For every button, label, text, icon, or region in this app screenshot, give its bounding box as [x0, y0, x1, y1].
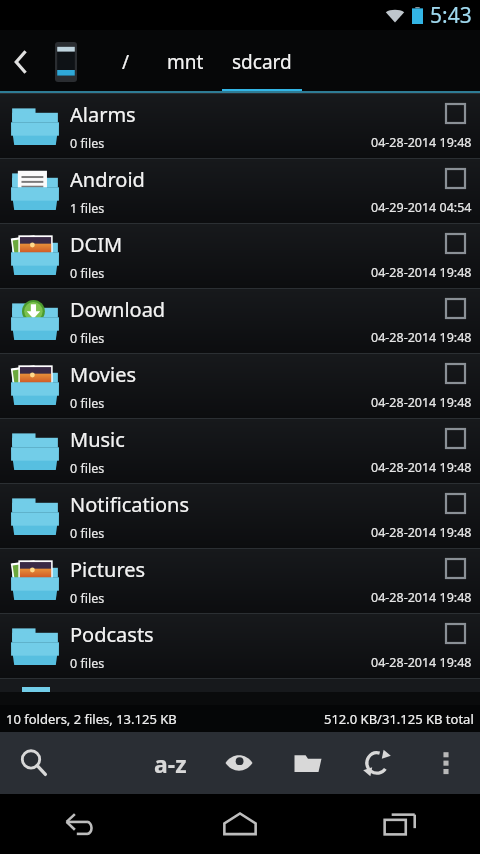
- button[interactable]: Select Download: [446, 299, 465, 318]
- staticText: 04-28-2014 19:48: [371, 394, 472, 411]
- button[interactable]: Select Podcasts: [446, 624, 465, 643]
- button[interactable]: More options: [411, 732, 480, 794]
- staticText: 04-29-2014 04:54: [371, 199, 472, 216]
- button[interactable]: Select Android: [446, 169, 465, 188]
- button[interactable]: Select Movies: [446, 364, 465, 383]
- staticText: Movies: [70, 361, 137, 388]
- button[interactable]: Select DCIM: [446, 234, 465, 253]
- button[interactable]: Music: [0, 419, 480, 483]
- staticText: Podcasts: [70, 621, 154, 648]
- staticText: a-z: [154, 748, 187, 779]
- staticText: 5:43: [430, 1, 472, 30]
- button[interactable]: mnt: [148, 30, 222, 93]
- staticText: 512.0 KB/31.125 KB total: [324, 710, 474, 728]
- button[interactable]: Android: [0, 159, 480, 223]
- staticText: 0 files: [70, 135, 105, 152]
- button[interactable]: Refresh: [342, 732, 411, 794]
- staticText: 10 folders, 2 files, 13.125 KB: [6, 710, 177, 728]
- staticText: 04-28-2014 19:48: [371, 654, 472, 671]
- staticText: 0 files: [70, 590, 105, 607]
- button[interactable]: sdcard: [222, 30, 302, 93]
- button[interactable]: Movies: [0, 354, 480, 418]
- button[interactable]: Select Music: [446, 429, 465, 448]
- button[interactable]: Back: [0, 794, 160, 854]
- staticText: /: [122, 49, 130, 75]
- button[interactable]: New folder: [273, 732, 342, 794]
- button[interactable]: Back: [0, 30, 42, 93]
- button[interactable]: /: [104, 30, 148, 93]
- button[interactable]: Storage: [42, 30, 90, 93]
- staticText: 04-28-2014 19:48: [371, 459, 472, 476]
- staticText: DCIM: [70, 231, 123, 258]
- button[interactable]: Download: [0, 289, 480, 353]
- button[interactable]: Podcasts: [0, 614, 480, 678]
- staticText: sdcard: [232, 49, 292, 75]
- staticText: 0 files: [70, 460, 105, 477]
- button[interactable]: DCIM: [0, 224, 480, 288]
- staticText: Alarms: [70, 101, 136, 128]
- button[interactable]: Sort a to z: [136, 732, 204, 794]
- button[interactable]: Show hidden: [204, 732, 273, 794]
- button[interactable]: Pictures: [0, 549, 480, 613]
- button[interactable]: Recent apps: [320, 794, 480, 854]
- button[interactable]: Notifications: [0, 484, 480, 548]
- button[interactable]: Select Alarms: [446, 104, 465, 123]
- staticText: Music: [70, 426, 125, 453]
- button[interactable]: Select Pictures: [446, 559, 465, 578]
- staticText: 0 files: [70, 395, 105, 412]
- staticText: mnt: [167, 49, 204, 75]
- button[interactable]: Select Notifications: [446, 494, 465, 513]
- staticText: Notifications: [70, 491, 189, 518]
- staticText: 1 files: [70, 200, 105, 217]
- staticText: 0 files: [70, 330, 105, 347]
- staticText: 0 files: [70, 655, 105, 672]
- staticText: 04-28-2014 19:48: [371, 589, 472, 606]
- staticText: 04-28-2014 19:48: [371, 134, 472, 151]
- button[interactable]: Search: [0, 732, 68, 794]
- button[interactable]: Home: [160, 794, 320, 854]
- staticText: Android: [70, 166, 145, 193]
- staticText: 0 files: [70, 525, 105, 542]
- staticText: 04-28-2014 19:48: [371, 524, 472, 541]
- button[interactable]: Alarms: [0, 94, 480, 158]
- staticText: 0 files: [70, 265, 105, 282]
- staticText: 04-28-2014 19:48: [371, 264, 472, 281]
- staticText: Download: [70, 296, 166, 323]
- staticText: Pictures: [70, 556, 146, 583]
- staticText: 04-28-2014 19:48: [371, 329, 472, 346]
